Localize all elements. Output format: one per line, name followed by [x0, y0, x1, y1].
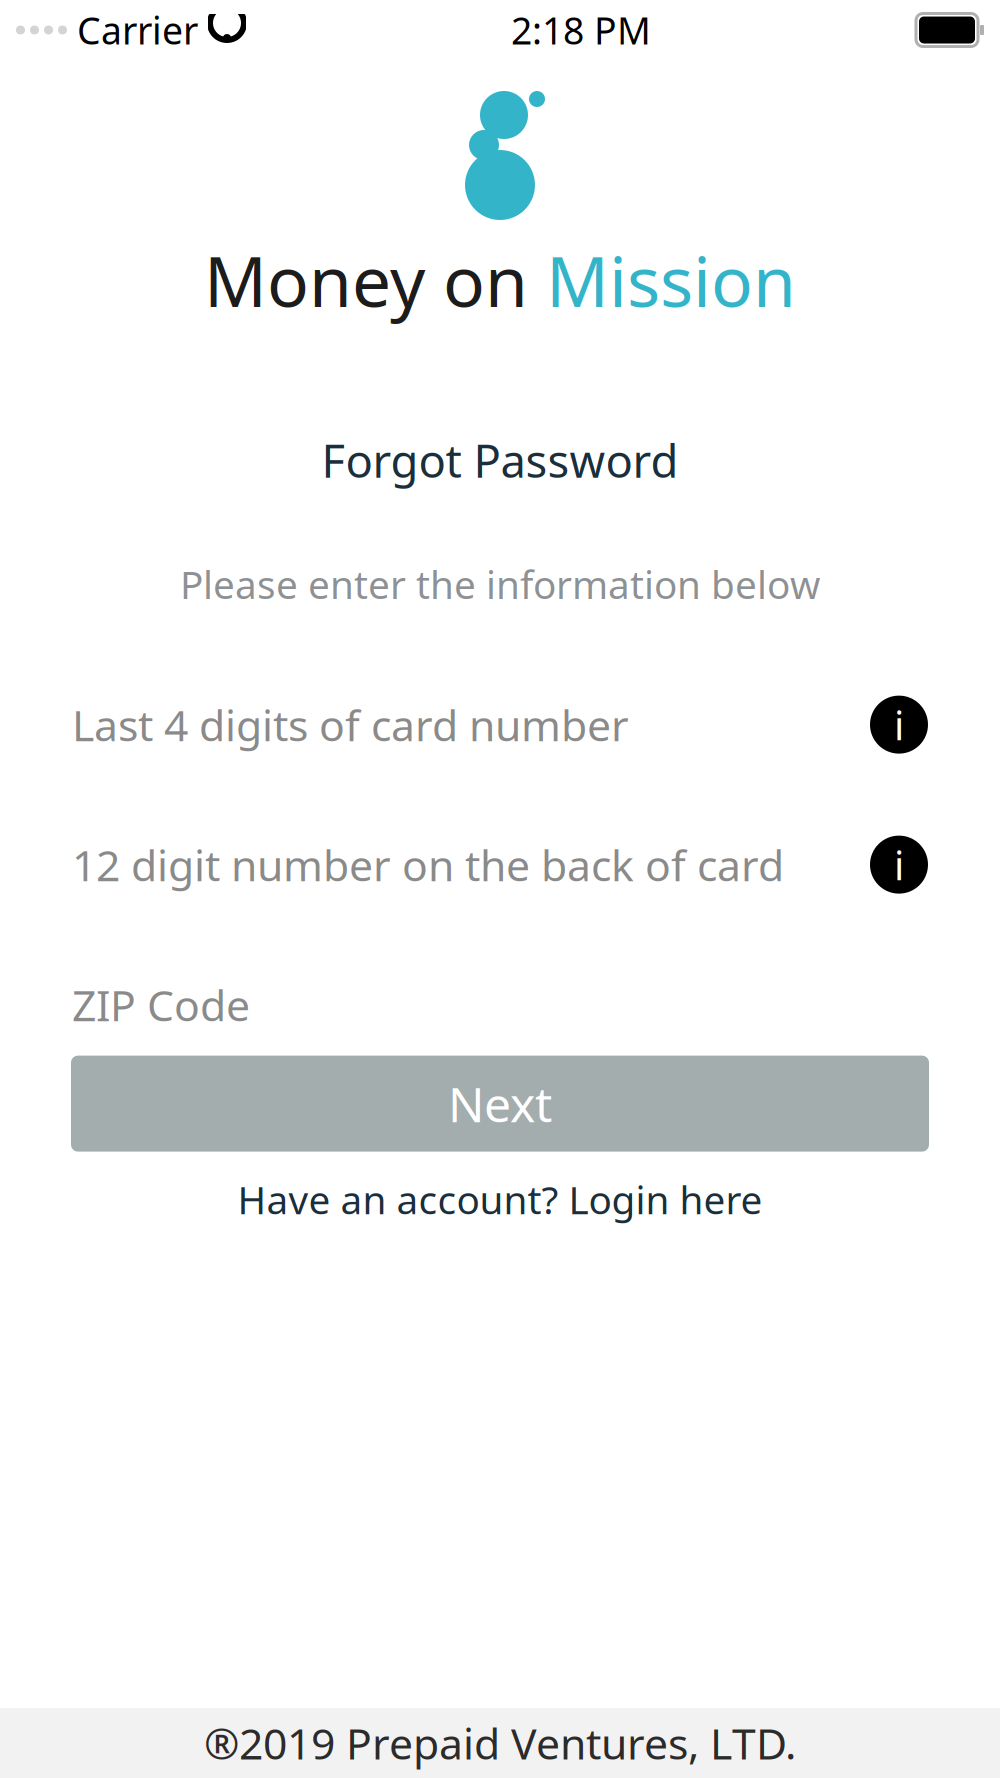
- button[interactable]: More information: [870, 836, 928, 894]
- staticText: Forgot Password: [321, 430, 678, 490]
- staticText: Money on: [204, 234, 546, 326]
- staticText: Next: [448, 1072, 552, 1135]
- staticText: 2:18 PM: [511, 5, 651, 55]
- staticText: i: [894, 838, 904, 891]
- staticText: Have an account? Login here: [237, 1174, 762, 1225]
- staticText: 12 digit number on the back of card: [72, 836, 784, 893]
- staticText: Last 4 digits of card number: [72, 696, 629, 753]
- button[interactable]: More information: [870, 696, 928, 754]
- staticText: Please enter the information below: [180, 558, 820, 610]
- staticText: i: [894, 698, 904, 751]
- staticText: ®2019 Prepaid Ventures, LTD.: [204, 1715, 796, 1771]
- staticText: Carrier: [77, 5, 198, 55]
- button[interactable]: Have an account? Login here: [217, 1164, 782, 1235]
- staticText: ZIP Code: [72, 976, 250, 1033]
- button[interactable]: Next: [71, 1056, 929, 1152]
- staticText: Mission: [546, 234, 796, 326]
